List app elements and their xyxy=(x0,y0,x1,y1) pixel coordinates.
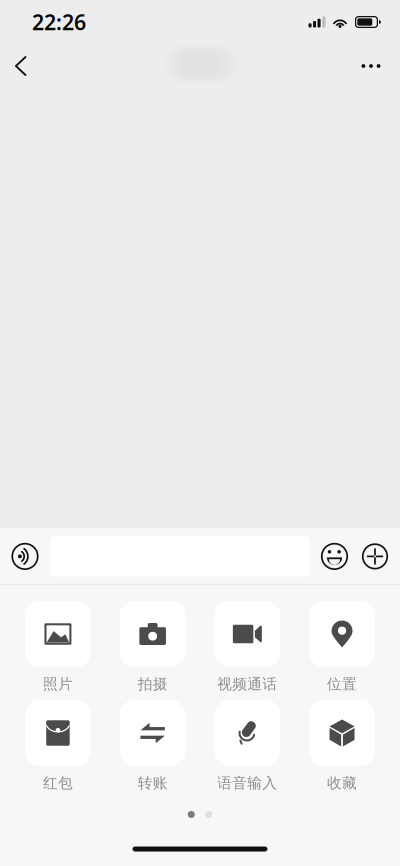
button[interactable]: 红包 xyxy=(25,700,91,792)
staticText: 照片 xyxy=(43,675,73,693)
button[interactable]: 位置 xyxy=(309,601,375,693)
button[interactable]: 照片 xyxy=(25,601,91,693)
button[interactable]: 收藏 xyxy=(309,700,375,792)
button[interactable]: 拍摄 xyxy=(120,601,186,693)
button[interactable]: Emoji xyxy=(310,528,359,584)
button[interactable]: Back xyxy=(1,44,41,88)
staticText: 收藏 xyxy=(327,774,357,792)
button[interactable]: 视频通话 xyxy=(214,601,280,693)
staticText: 转账 xyxy=(138,774,168,792)
button[interactable]: 语音输入 xyxy=(214,700,280,792)
button[interactable]: More actions xyxy=(359,528,391,584)
staticText: 红包 xyxy=(43,774,73,792)
staticText: 22:26 xyxy=(32,8,86,36)
staticText: 位置 xyxy=(327,675,357,693)
button[interactable]: More xyxy=(351,44,391,88)
staticText: 语音输入 xyxy=(217,774,277,792)
staticText: 拍摄 xyxy=(138,675,168,693)
button[interactable]: Voice message xyxy=(0,528,50,584)
button[interactable] xyxy=(50,528,310,584)
button[interactable]: 转账 xyxy=(120,700,186,792)
staticText: 视频通话 xyxy=(217,675,277,693)
